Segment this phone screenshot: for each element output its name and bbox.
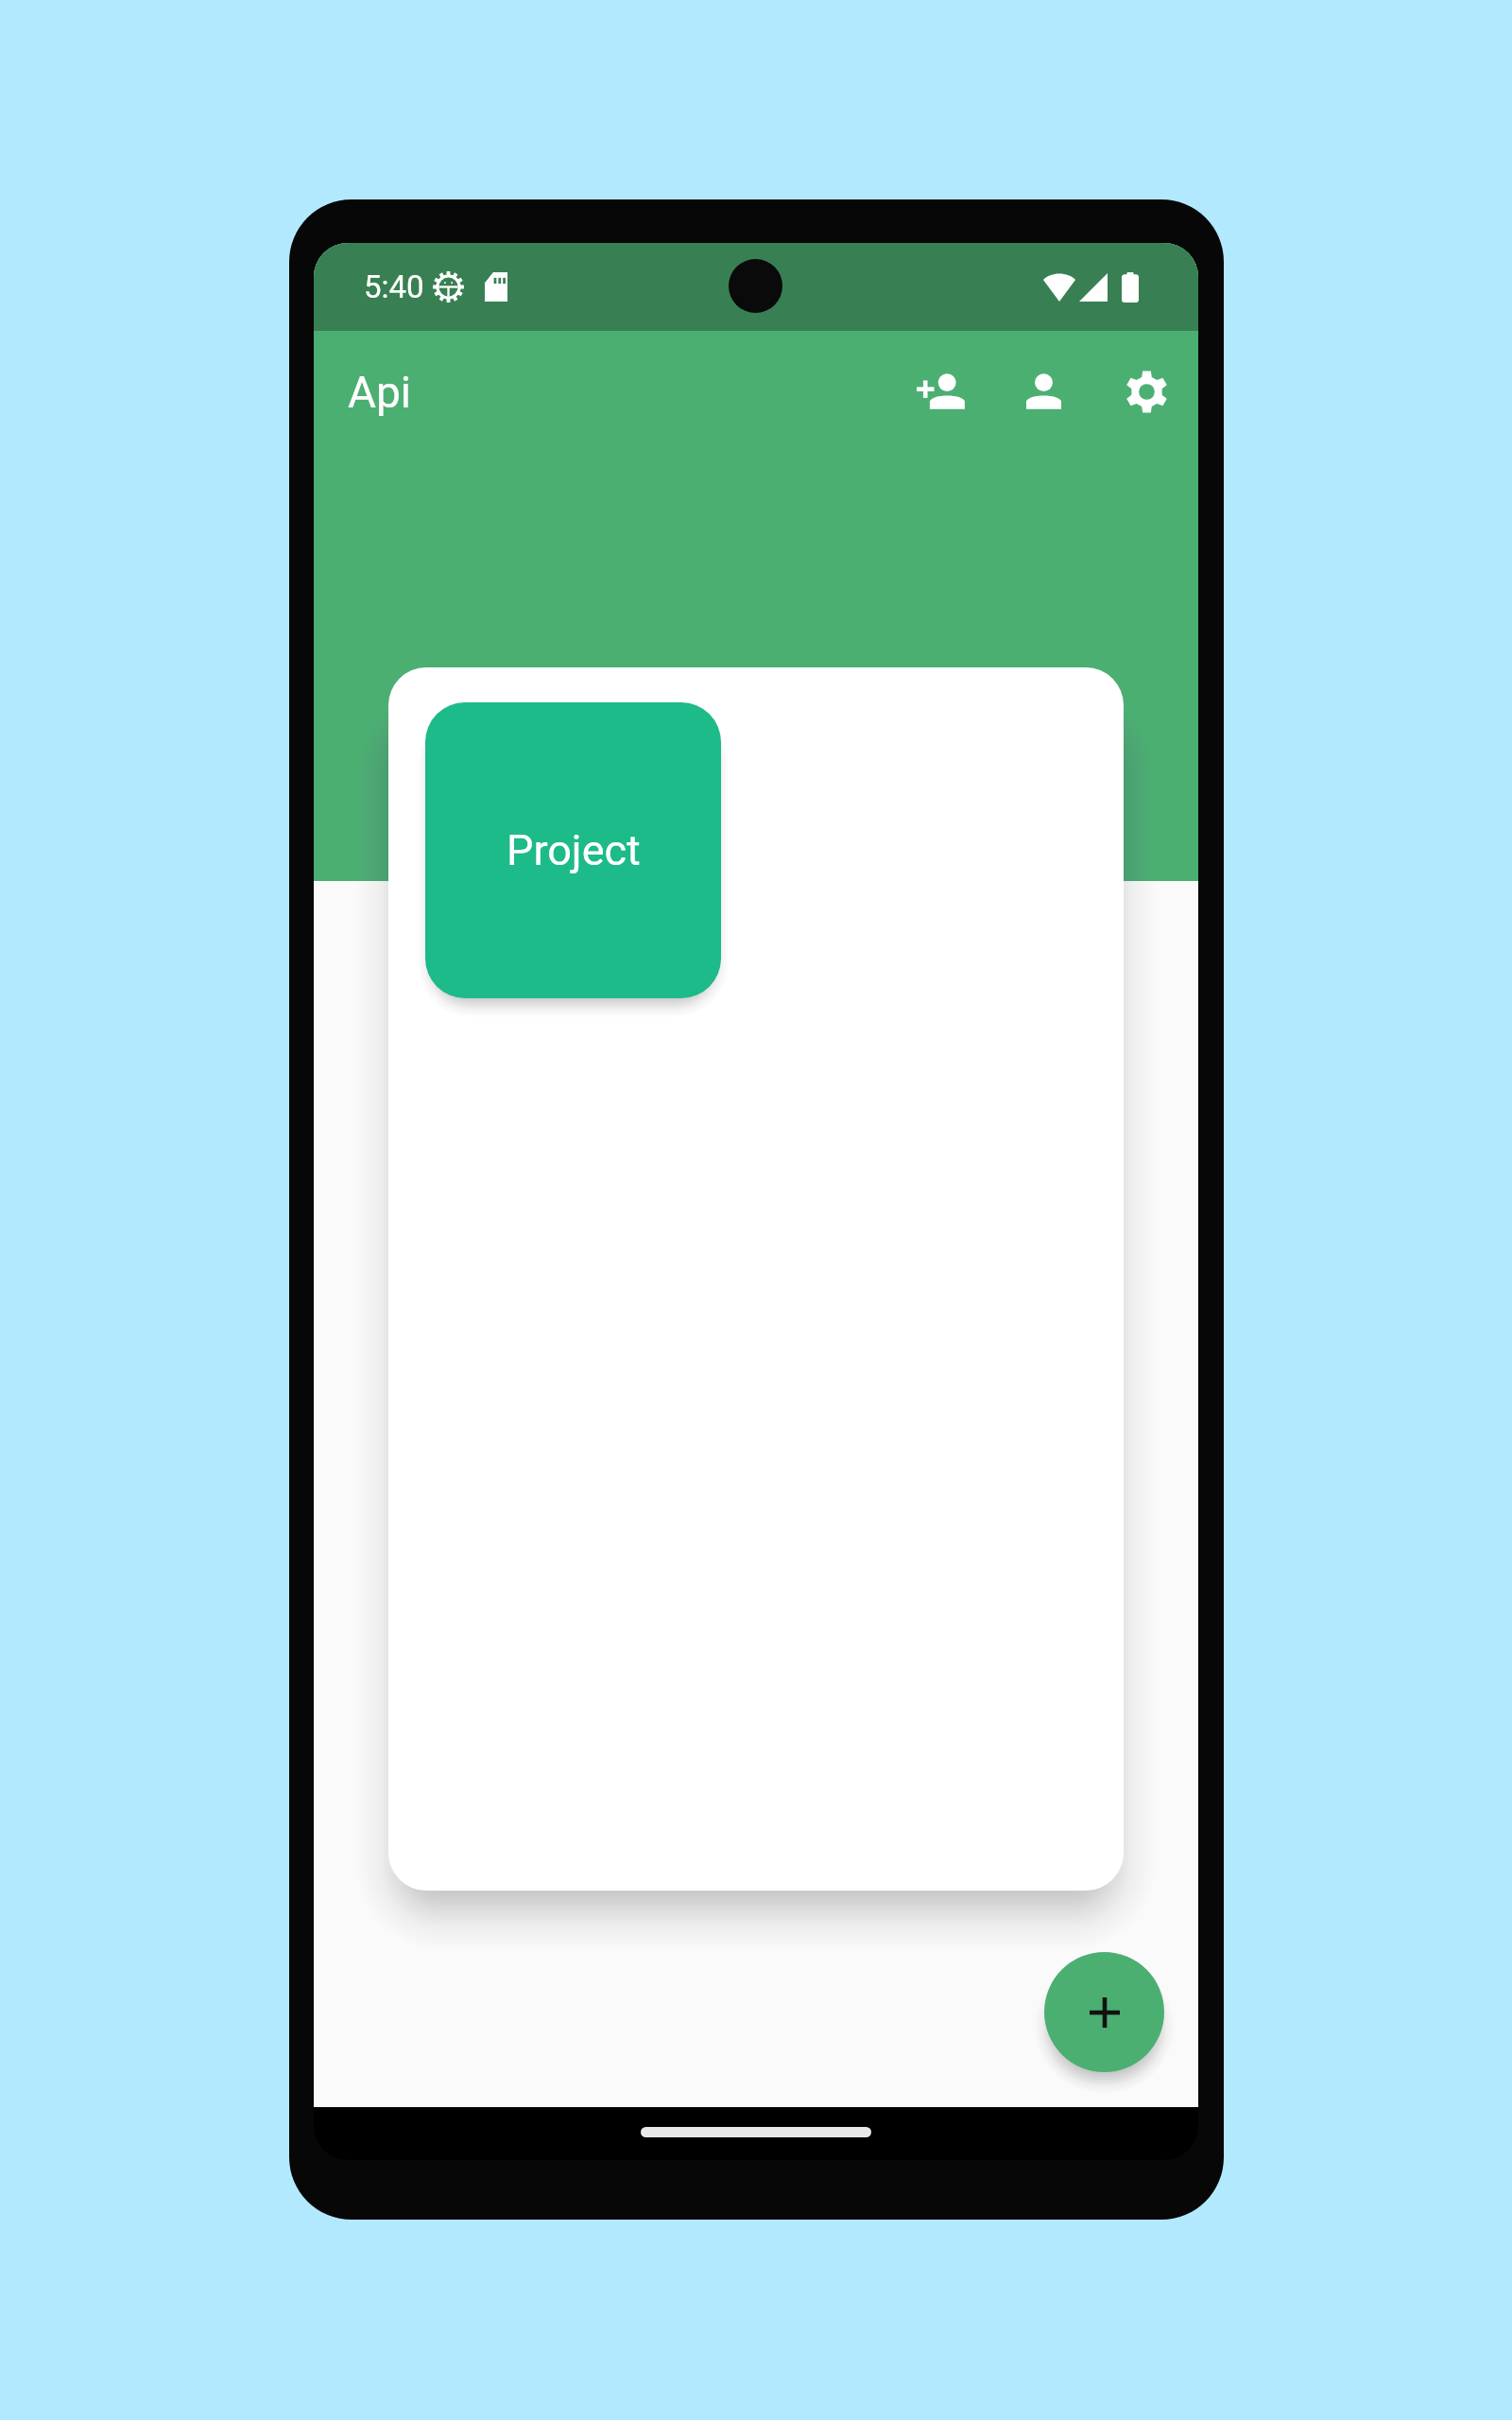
staticText: 5:40 [364,268,424,305]
staticText: Api [348,367,412,418]
button[interactable]: Add [1044,1952,1164,2072]
button[interactable]: Project [425,702,721,998]
staticText: Project [507,825,641,875]
button[interactable]: Project [388,667,1124,1891]
button[interactable]: Account [998,346,1089,437]
button[interactable]: Settings [1101,346,1192,437]
button[interactable]: Add person [895,346,986,437]
